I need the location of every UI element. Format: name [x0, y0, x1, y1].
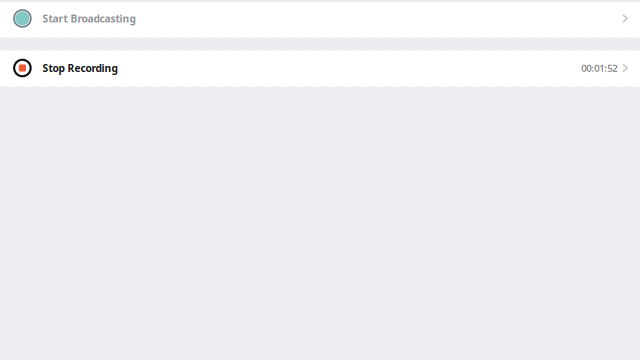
staticText: Start Broadcasting	[42, 11, 135, 25]
staticText: Stop Recording	[42, 61, 117, 75]
button[interactable]: Stop Recording	[0, 50, 640, 86]
button[interactable]: Start Broadcasting	[0, 2, 640, 37]
staticText: 00:01:52	[581, 61, 617, 75]
